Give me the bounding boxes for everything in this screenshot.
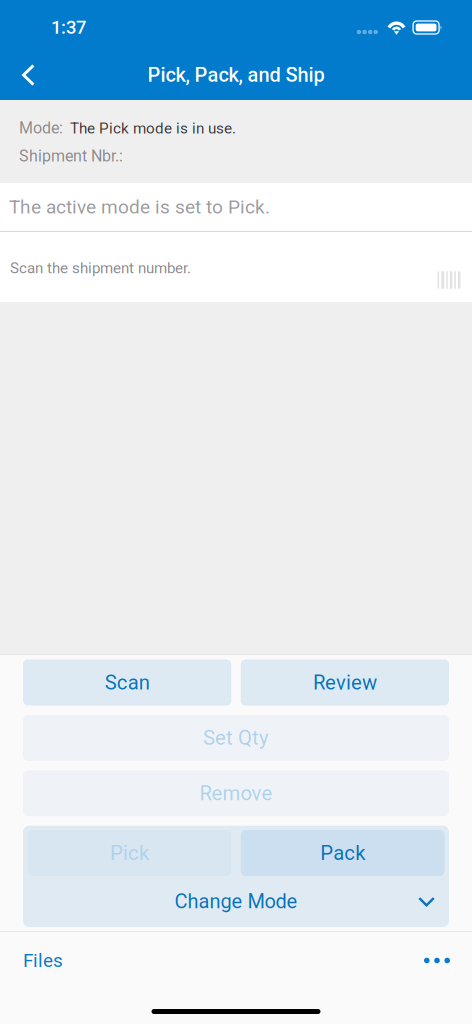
button[interactable]: Back: [0, 50, 53, 100]
staticText: Scan the shipment number.: [10, 259, 191, 277]
staticText: Set Qty: [203, 726, 269, 750]
button[interactable]: Files: [0, 938, 81, 982]
button[interactable]: Change Mode: [23, 876, 449, 927]
button[interactable]: Pack: [241, 830, 445, 876]
staticText: Pick, Pack, and Ship: [147, 63, 324, 87]
button[interactable]: Remove: [23, 770, 449, 816]
button[interactable]: Set Qty: [23, 715, 449, 761]
staticText: Review: [313, 671, 377, 694]
button[interactable]: Scan: [23, 659, 231, 705]
staticText: Remove: [199, 781, 272, 805]
button[interactable]: More options: [406, 938, 472, 982]
staticText: Pick: [110, 841, 149, 865]
staticText: Mode:: [19, 119, 63, 137]
staticText: The active mode is set to Pick.: [9, 196, 270, 218]
staticText: Scan: [105, 671, 150, 694]
staticText: Change Mode: [174, 890, 297, 913]
staticText: 1:37: [51, 17, 86, 38]
button[interactable]: Review: [241, 659, 449, 705]
staticText: Pack: [320, 841, 365, 865]
button[interactable]: Pick: [27, 830, 231, 876]
staticText: Shipment Nbr.:: [19, 147, 123, 165]
staticText: The Pick mode is in use.: [70, 119, 236, 137]
staticText: Files: [23, 949, 63, 972]
